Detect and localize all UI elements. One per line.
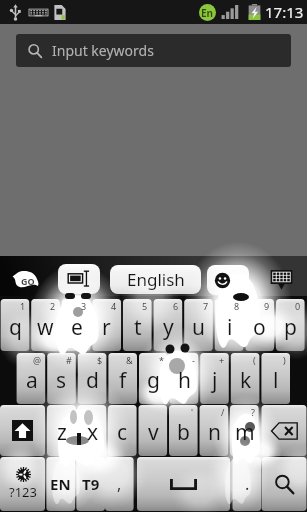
staticText: T9 [82,474,100,494]
staticText: n [208,418,221,447]
staticText: @ [33,354,42,366]
button[interactable] [231,353,260,404]
staticText: / [221,406,225,418]
button[interactable] [184,299,213,351]
staticText: En [201,6,214,20]
button[interactable] [233,457,262,511]
button[interactable]: Search [262,457,307,511]
button[interactable] [200,405,229,456]
staticText: g [147,366,160,395]
staticText: English [127,268,185,291]
button[interactable]: Symbols [0,457,45,511]
button[interactable]: Keyboard layout [269,269,294,292]
staticText: i [227,313,233,342]
button[interactable] [200,353,229,404]
button[interactable] [78,353,107,404]
staticText: 5 [142,300,148,312]
button[interactable]: Input keywords [16,34,291,67]
button[interactable] [62,299,91,351]
button[interactable] [105,457,134,511]
staticText: p [284,313,297,342]
staticText: 3 [81,300,87,312]
staticText: ?123 [9,483,37,501]
staticText: r [102,313,111,342]
button[interactable] [17,353,46,404]
staticText: x [87,418,99,447]
staticText: b [177,418,190,447]
button[interactable]: Space [137,457,230,511]
staticText: q [9,313,22,342]
staticText: & [126,354,133,366]
button[interactable]: Backspace [262,405,307,456]
button[interactable] [110,265,201,294]
staticText: t [134,313,142,342]
staticText: w [37,313,54,342]
button[interactable] [108,405,137,456]
button[interactable]: GO Keyboard menu [12,270,39,289]
staticText: v [148,418,159,447]
button[interactable] [31,299,60,351]
staticText: 0 [295,300,301,312]
staticText: EN [50,474,71,494]
staticText: ( [253,354,256,366]
staticText: ' [191,406,194,418]
staticText: 1 [20,300,26,312]
staticText: + [219,354,225,366]
button[interactable] [230,405,259,456]
staticText: c [117,418,128,447]
button[interactable] [76,457,105,511]
staticText: 8 [234,300,240,312]
staticText: y [163,313,174,342]
staticText: k [240,366,252,395]
staticText: f [119,366,127,395]
button[interactable] [46,457,75,511]
staticText: m [235,418,255,447]
button[interactable] [169,405,198,456]
staticText: s [56,366,67,395]
button[interactable] [154,299,183,351]
staticText: 9 [264,300,270,312]
staticText: z [57,418,67,447]
button[interactable] [123,299,152,351]
button[interactable] [139,353,168,404]
staticText: o [253,313,266,342]
staticText: , [117,473,122,495]
button[interactable] [261,353,290,404]
button[interactable] [78,405,107,456]
staticText: l [273,366,279,395]
button[interactable] [245,299,274,351]
button[interactable]: Emoji [209,264,253,294]
button[interactable]: Shift [0,405,45,456]
button[interactable] [108,353,137,404]
button[interactable] [276,299,305,351]
button[interactable] [47,353,76,404]
staticText: 2 [50,300,56,312]
staticText: j [212,366,218,395]
button[interactable] [170,353,199,404]
staticText: * [159,354,164,366]
staticText: u [192,313,205,342]
staticText: 6 [173,300,179,312]
button[interactable]: Text editing [58,264,100,294]
staticText: d [86,366,99,395]
staticText: Input keywords [52,41,154,60]
staticText: 4 [111,300,117,312]
staticText: 7 [203,300,209,312]
staticText: ) [283,354,286,366]
staticText: e [71,313,83,342]
button[interactable] [139,405,168,456]
staticText: h [178,366,191,395]
button[interactable] [215,299,244,351]
staticText: # [66,354,72,366]
staticText: a [26,366,38,395]
staticText: ? [251,406,255,418]
staticText: - [192,354,195,366]
button[interactable] [92,299,121,351]
staticText: $ [97,354,103,366]
button[interactable] [1,299,30,351]
staticText: . [245,473,250,495]
button[interactable] [47,405,76,456]
staticText: GO [21,275,35,287]
staticText: 17:13 [265,2,304,22]
